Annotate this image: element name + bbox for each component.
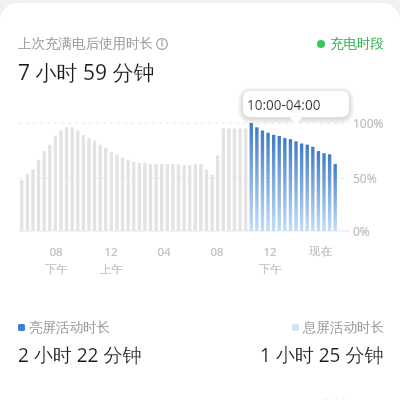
staticText: 08 — [49, 244, 63, 260]
staticText: 08 — [210, 244, 224, 260]
staticText: 2 小时 22 分钟 — [18, 342, 142, 368]
staticText: 04 — [157, 244, 171, 260]
staticText: 0% — [353, 223, 370, 239]
staticText: 10:00-04:00 — [247, 96, 321, 114]
staticText: 上午 — [100, 262, 123, 276]
staticText: 7 小时 59 分钟 — [18, 58, 155, 87]
staticText: 1 小时 25 分钟 — [260, 342, 384, 368]
staticText: 下午 — [259, 262, 282, 276]
button[interactable]: 亮屏活动时长 — [18, 319, 200, 368]
staticText: 现在 — [309, 244, 332, 258]
staticText: 100% — [353, 115, 384, 131]
staticText: 充电时段 — [330, 35, 384, 52]
button[interactable]: 充电时段 — [317, 35, 384, 52]
staticText: 12 — [104, 244, 118, 260]
staticText: 亮屏活动时长 — [29, 319, 110, 336]
staticText: 息屏活动时长 — [303, 319, 384, 336]
other: 信息 — [156, 38, 168, 50]
staticText: 50% — [353, 170, 377, 186]
button[interactable]: 息屏活动时长 — [200, 319, 384, 368]
button[interactable]: 上次充满电后使用时长 — [18, 35, 168, 52]
staticText: 12 — [263, 244, 277, 260]
staticText: 下午 — [45, 262, 68, 276]
staticText: 上次充满电后使用时长 — [18, 35, 153, 52]
